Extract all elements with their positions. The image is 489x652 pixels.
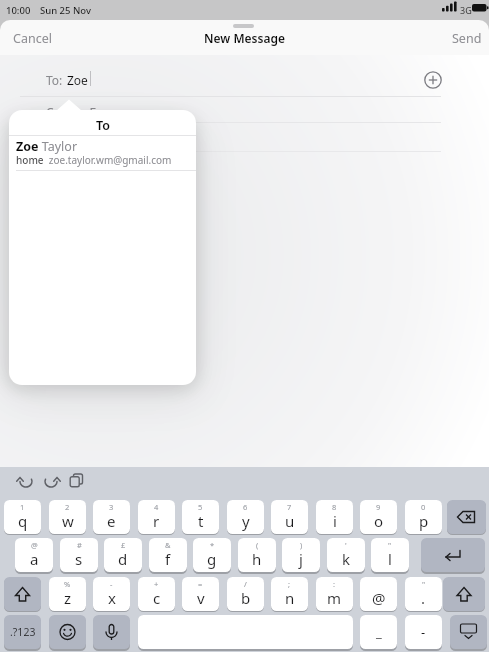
button[interactable]: 8 — [316, 500, 353, 534]
button[interactable]: 0 — [405, 500, 442, 534]
staticText: n — [285, 588, 295, 608]
button[interactable]: Cancel — [8, 26, 68, 48]
staticText: £ — [121, 540, 126, 550]
staticText: ( — [256, 540, 259, 550]
button[interactable]: 7 — [271, 500, 308, 534]
staticText: - — [110, 579, 113, 589]
staticText: _ — [376, 623, 382, 641]
staticText: t — [198, 511, 204, 531]
button[interactable] — [443, 577, 485, 611]
staticText: p — [419, 511, 429, 531]
button[interactable]: .?123 — [4, 615, 41, 649]
button[interactable]: & — [149, 538, 187, 572]
staticText: 6 — [243, 502, 248, 512]
staticText: 4 — [154, 502, 159, 512]
button[interactable]: 4 — [138, 500, 175, 534]
staticText: Cc/Bcc, From: — [46, 104, 123, 120]
button[interactable]: / — [227, 577, 264, 611]
staticText: e — [107, 511, 116, 531]
staticText: k — [342, 549, 351, 569]
button[interactable]: % — [49, 577, 86, 611]
staticText: c — [153, 588, 161, 608]
button[interactable] — [450, 615, 487, 649]
staticText: 9 — [376, 502, 381, 512]
button[interactable]: " — [371, 538, 409, 572]
staticText: o — [374, 511, 384, 531]
button[interactable] — [41, 468, 63, 490]
button[interactable]: Send — [445, 26, 485, 48]
button[interactable]: 1 — [4, 500, 41, 534]
button[interactable]: * — [193, 538, 231, 572]
staticText: 10:00 — [6, 4, 31, 17]
button[interactable] — [138, 615, 353, 649]
staticText: a — [30, 549, 39, 569]
button[interactable]: ) — [282, 538, 320, 572]
staticText: home zoe.taylor.wm@gmail.com — [16, 153, 172, 167]
button[interactable]: _ — [360, 615, 397, 649]
staticText: @ — [372, 588, 386, 608]
staticText: # — [77, 540, 82, 550]
staticText: m — [327, 588, 342, 608]
staticText: s — [75, 549, 83, 569]
staticText: " — [388, 540, 392, 550]
button[interactable]: - — [93, 577, 130, 611]
button[interactable]: ( — [238, 538, 276, 572]
button[interactable] — [67, 468, 89, 490]
staticText: ; — [288, 579, 291, 589]
staticText: u — [285, 511, 295, 531]
button[interactable]: @ — [360, 577, 397, 611]
button[interactable]: # — [60, 538, 98, 572]
button[interactable] — [20, 60, 416, 94]
staticText: Zoe — [67, 72, 88, 88]
staticText: r — [153, 511, 160, 531]
staticText: ' — [345, 540, 347, 550]
button[interactable]: 6 — [227, 500, 264, 534]
button[interactable]: 3 — [93, 500, 130, 534]
button[interactable] — [422, 69, 444, 91]
staticText: Send — [452, 30, 482, 47]
button[interactable] — [93, 615, 130, 649]
staticText: q — [18, 511, 28, 531]
button[interactable]: ; — [271, 577, 308, 611]
staticText: To: — [46, 72, 63, 88]
button[interactable] — [421, 538, 485, 572]
button[interactable] — [49, 615, 86, 649]
staticText: 5 — [198, 502, 203, 512]
staticText: . — [421, 588, 426, 608]
staticText: v — [197, 588, 205, 608]
button[interactable]: - — [405, 615, 442, 649]
button[interactable] — [447, 500, 486, 534]
staticText: + — [154, 579, 159, 589]
staticText: * — [210, 540, 215, 550]
button[interactable]: 2 — [49, 500, 86, 534]
button[interactable] — [15, 468, 37, 490]
button[interactable] — [4, 577, 41, 611]
button[interactable]: £ — [104, 538, 142, 572]
staticText: f — [165, 549, 171, 569]
staticText: 7 — [287, 502, 292, 512]
staticText: @ — [31, 540, 38, 550]
staticText: .?123 — [10, 625, 36, 639]
button[interactable]: : — [316, 577, 353, 611]
button[interactable]: = — [182, 577, 219, 611]
staticText: Cancel — [13, 30, 52, 47]
staticText: h — [252, 549, 262, 569]
button[interactable]: + — [138, 577, 175, 611]
button[interactable]: @ — [15, 538, 53, 572]
button[interactable]: 5 — [182, 500, 219, 534]
staticText: w — [62, 511, 74, 531]
button[interactable]: 9 — [360, 500, 397, 534]
button[interactable]: " — [405, 577, 442, 611]
button[interactable]: ' — [327, 538, 365, 572]
staticText: z — [64, 588, 72, 608]
staticText: : — [333, 579, 336, 589]
staticText: & — [165, 540, 171, 550]
staticText: g — [207, 549, 217, 569]
staticText: % — [64, 579, 71, 589]
staticText: Sun 25 Nov — [40, 4, 91, 17]
staticText: i — [333, 511, 337, 531]
staticText: 1 — [20, 502, 25, 512]
staticText: / — [244, 579, 247, 589]
button[interactable]: Zoe Taylor — [9, 135, 196, 170]
staticText: 2 — [65, 502, 70, 512]
